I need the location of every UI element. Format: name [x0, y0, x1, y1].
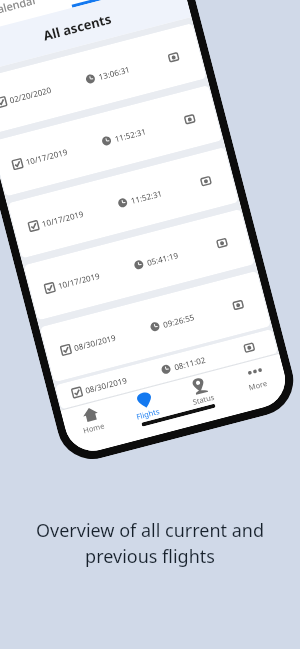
button[interactable]: 10/17/2019: [0, 85, 223, 197]
staticText: 08/30/2019: [73, 332, 117, 353]
staticText: 08/30/2019: [84, 374, 128, 396]
button[interactable]: More: [224, 354, 287, 397]
staticText: Flights: [135, 406, 161, 422]
staticText: 11:52:31: [129, 187, 163, 206]
other: More: [245, 362, 265, 381]
staticText: 10/17/2019: [57, 270, 101, 291]
button[interactable]: 02/20/2020: [0, 23, 206, 135]
staticText: 05:41:19: [146, 249, 179, 268]
other: Status: [190, 376, 209, 395]
other: Home: [81, 404, 100, 424]
staticText: 10/17/2019: [24, 146, 69, 167]
staticText: Status: [191, 392, 215, 407]
button[interactable]: 10/17/2019: [8, 147, 239, 258]
staticText: All ascents: [41, 9, 114, 45]
button[interactable]: List: [64, 0, 181, 5]
staticText: Home: [82, 420, 106, 435]
staticText: 08:11:02: [173, 354, 207, 372]
button[interactable]: Home: [61, 397, 122, 440]
staticText: 09:26:55: [162, 311, 195, 330]
button[interactable]: Status: [169, 368, 232, 411]
button[interactable]: 08/30/2019: [40, 271, 271, 382]
button[interactable]: 08/30/2019: [55, 329, 278, 409]
button[interactable]: Calendar: [0, 0, 72, 33]
button[interactable]: Flights: [115, 382, 177, 426]
other: Flights: [135, 390, 154, 410]
staticText: 13:06:31: [97, 63, 131, 82]
staticText: Overview of all current and previous fli…: [0, 518, 300, 569]
button[interactable]: 10/17/2019: [24, 209, 255, 320]
staticText: 11:52:31: [113, 125, 147, 144]
staticText: More: [248, 378, 268, 392]
staticText: 02/20/2020: [8, 84, 53, 105]
staticText: Calendar: [0, 0, 39, 18]
staticText: 10/17/2019: [40, 208, 85, 229]
